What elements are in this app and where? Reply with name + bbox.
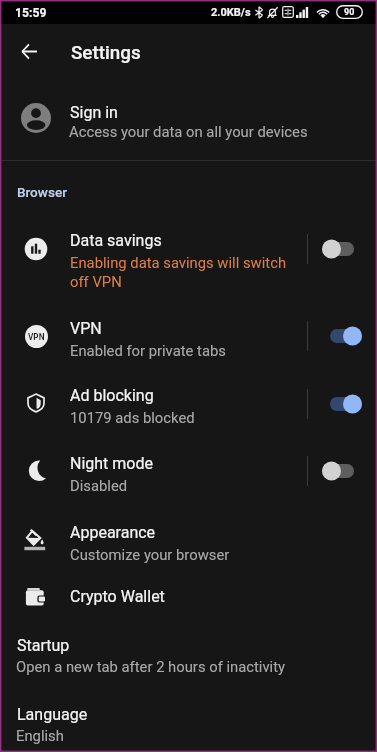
staticText: 15:59 bbox=[15, 6, 47, 20]
staticText: 10179 ads blocked bbox=[70, 409, 195, 426]
staticText: Data savings bbox=[70, 231, 162, 250]
staticText: Sign in bbox=[70, 103, 118, 122]
staticText: Open a new tab after 2 hours of inactivi… bbox=[16, 658, 286, 675]
button[interactable] bbox=[0, 697, 377, 752]
button[interactable]: Night mode toggle bbox=[318, 454, 364, 488]
staticText: Browser bbox=[17, 184, 68, 200]
button[interactable] bbox=[0, 86, 377, 158]
staticText: Disabled bbox=[70, 477, 128, 494]
staticText: off VPN bbox=[70, 273, 122, 290]
button[interactable] bbox=[0, 628, 377, 684]
staticText: Enabled for private tabs bbox=[70, 342, 226, 359]
staticText: Language bbox=[17, 705, 88, 724]
button[interactable]: Ad blocking toggle bbox=[318, 387, 364, 421]
staticText: Ad blocking bbox=[70, 386, 154, 405]
staticText: VPN bbox=[70, 319, 102, 338]
button[interactable]: VPN toggle bbox=[318, 319, 364, 353]
button[interactable] bbox=[0, 374, 377, 435]
button[interactable]: Data savings toggle bbox=[318, 232, 364, 266]
staticText: VPN bbox=[28, 332, 45, 342]
staticText: Customize your browser bbox=[70, 546, 230, 563]
staticText: Night mode bbox=[70, 454, 153, 473]
button[interactable] bbox=[0, 214, 377, 298]
staticText: Enabling data savings will switch bbox=[70, 254, 287, 271]
button[interactable] bbox=[0, 306, 377, 367]
staticText: Settings bbox=[71, 42, 141, 64]
button[interactable] bbox=[0, 572, 377, 620]
button[interactable] bbox=[0, 441, 377, 502]
staticText: Access your data on all your devices bbox=[69, 123, 308, 140]
button[interactable]: Back bbox=[12, 34, 46, 68]
button[interactable] bbox=[0, 510, 377, 571]
staticText: English bbox=[16, 727, 64, 744]
staticText: Appearance bbox=[70, 523, 156, 542]
staticText: 2.0KB/s bbox=[211, 6, 251, 19]
staticText: 90 bbox=[344, 7, 355, 18]
staticText: Crypto Wallet bbox=[70, 587, 165, 606]
staticText: Startup bbox=[17, 636, 70, 655]
